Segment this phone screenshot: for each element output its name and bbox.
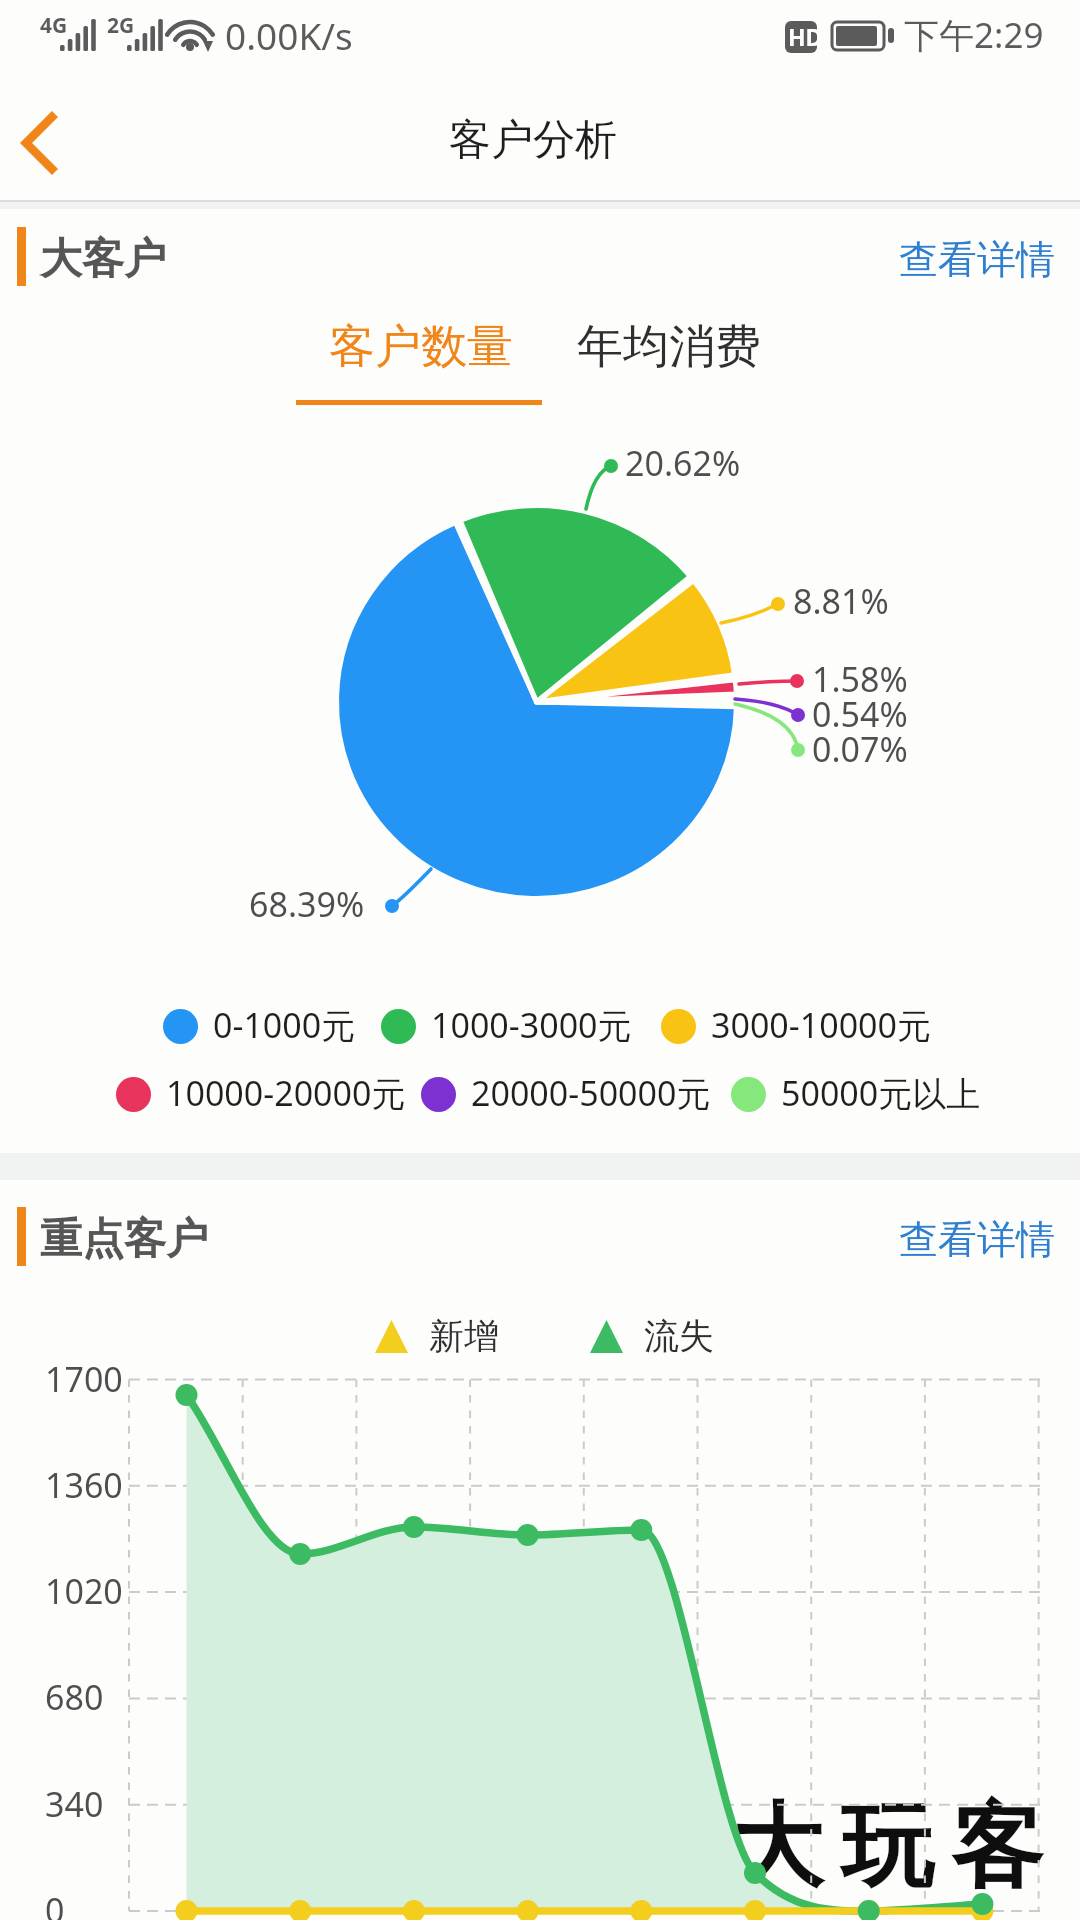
staticText: 4G <box>40 11 68 40</box>
staticText: 客户分析 <box>449 114 617 167</box>
button[interactable]: 10000-20000元 <box>116 1066 406 1122</box>
staticText: 0 <box>45 1887 65 1920</box>
staticText: 2G <box>107 11 135 40</box>
staticText: 1020 <box>45 1568 123 1614</box>
staticText: 20000-50000元 <box>471 1070 711 1116</box>
button[interactable]: 查看详情 <box>873 1197 1080 1282</box>
button[interactable]: 20000-50000元 <box>421 1066 711 1122</box>
button[interactable]: Back <box>0 86 92 202</box>
staticText: 340 <box>45 1781 104 1827</box>
button[interactable]: 50000元以上 <box>731 1066 981 1122</box>
staticText: 0.54% <box>812 691 908 737</box>
staticText: 10000-20000元 <box>166 1070 406 1116</box>
staticText: 680 <box>45 1674 104 1720</box>
staticText: 68.39% <box>249 881 365 927</box>
staticText: 0.00K/s <box>225 10 353 60</box>
button[interactable]: 年均消费 <box>563 310 775 384</box>
staticText: 重点客户 <box>40 1213 208 1266</box>
staticText: 20.62% <box>625 440 741 486</box>
staticText: HD <box>788 21 823 52</box>
staticText: 1700 <box>45 1356 123 1402</box>
staticText: 查看详情 <box>899 1215 1055 1264</box>
staticText: 查看详情 <box>899 235 1055 284</box>
staticText: 1000-3000元 <box>431 1002 632 1048</box>
staticText: 下午2:29 <box>904 11 1044 59</box>
button[interactable]: 新增 <box>374 1315 499 1359</box>
staticText: 8.81% <box>793 578 889 624</box>
staticText: 1360 <box>45 1462 123 1508</box>
staticText: 0-1000元 <box>213 1002 356 1048</box>
staticText: 新增 <box>429 1314 499 1358</box>
button[interactable]: 0-1000元 <box>163 998 356 1054</box>
staticText: 3000-10000元 <box>711 1002 931 1048</box>
staticText: 年均消费 <box>577 318 761 376</box>
staticText: 1.58% <box>812 656 908 702</box>
staticText: 0.07% <box>812 726 908 772</box>
button[interactable]: 查看详情 <box>873 217 1080 302</box>
button[interactable]: 3000-10000元 <box>661 998 931 1054</box>
staticText: 50000元以上 <box>781 1070 981 1116</box>
button[interactable]: 1000-3000元 <box>381 998 632 1054</box>
staticText: 大客户 <box>40 233 166 286</box>
staticText: 大玩客 <box>722 1789 1052 1905</box>
button[interactable]: 客户数量 <box>315 310 527 384</box>
staticText: 客户数量 <box>329 318 513 376</box>
staticText: 流失 <box>644 1314 714 1358</box>
button[interactable]: 流失 <box>589 1315 714 1359</box>
